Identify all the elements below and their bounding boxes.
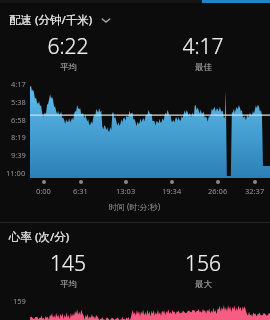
staticText: 最佳 [195,62,212,73]
staticText: 32:37 [245,186,265,196]
staticText: 0:00 [36,186,51,196]
staticText: 5:38 [11,97,26,107]
button[interactable]: 156 [135,249,270,290]
staticText: 平均 [60,279,77,290]
staticText: 时间 (时:分:秒) [109,201,161,212]
staticText: 配速 (分钟/千米) [9,12,93,28]
button[interactable]: 6:22 [0,32,135,73]
staticText: 145 [50,249,86,278]
staticText: 6:22 [47,32,89,61]
button[interactable]: 4:17 [135,32,270,73]
staticText: 6:58 [11,115,26,125]
staticText: 11:00 [6,168,26,178]
other: Change metric [101,15,111,25]
staticText: 6:31 [73,186,88,196]
staticText: 4:17 [11,79,26,89]
staticText: 9:39 [11,150,26,160]
staticText: 19:34 [162,186,182,196]
button[interactable]: 145 [0,249,135,290]
staticText: 159 [13,296,26,306]
staticText: 4:17 [182,32,224,61]
staticText: 8:19 [11,132,26,142]
button[interactable]: 配速 (分钟/千米) [0,6,270,30]
staticText: 平均 [60,62,77,73]
staticText: 156 [185,249,221,278]
staticText: 心率 (次/分) [9,229,70,245]
button[interactable]: 心率 (次/分) [0,223,270,247]
staticText: 26:06 [208,186,228,196]
staticText: 13:03 [116,186,136,196]
staticText: 最大 [195,279,212,290]
